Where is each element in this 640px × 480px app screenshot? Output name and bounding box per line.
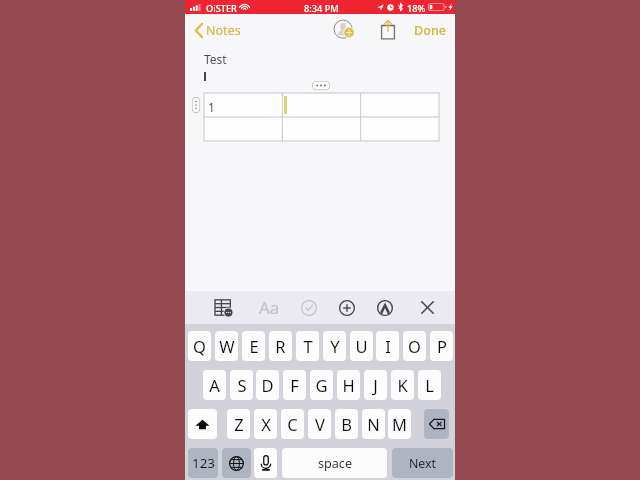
- button[interactable]: W: [215, 331, 238, 361]
- button[interactable]: L: [418, 370, 441, 400]
- staticText: C: [287, 413, 298, 435]
- button[interactable]: N: [362, 409, 385, 439]
- button[interactable]: A: [203, 370, 226, 400]
- staticText: Q: [193, 335, 206, 357]
- button[interactable]: Column options: [312, 81, 330, 90]
- button[interactable]: C: [281, 409, 304, 439]
- button[interactable]: T: [296, 331, 319, 361]
- button[interactable]: P: [430, 331, 453, 361]
- staticText: S: [237, 374, 247, 396]
- staticText: space: [318, 455, 352, 472]
- button[interactable]: Done: [409, 17, 451, 43]
- button[interactable]: X: [254, 409, 277, 439]
- button[interactable]: D: [256, 370, 279, 400]
- button[interactable]: H: [337, 370, 360, 400]
- button[interactable]: Markup: [372, 295, 398, 320]
- button[interactable]: Backspace: [424, 409, 449, 439]
- button[interactable]: K: [391, 370, 414, 400]
- staticText: O: [408, 335, 421, 357]
- button[interactable]: Next keyboard: [222, 448, 251, 478]
- staticText: I: [385, 335, 391, 357]
- staticText: Next: [409, 455, 436, 472]
- staticText: 123: [192, 454, 215, 472]
- button[interactable]: I: [376, 331, 399, 361]
- staticText: K: [397, 374, 408, 396]
- button[interactable]: Add people: [332, 17, 357, 43]
- staticText: B: [341, 413, 352, 435]
- staticText: W: [219, 335, 235, 357]
- staticText: P: [437, 335, 447, 357]
- staticText: V: [315, 413, 325, 435]
- button[interactable]: M: [388, 409, 411, 439]
- button[interactable]: J: [364, 370, 387, 400]
- staticText: N: [367, 413, 380, 435]
- button[interactable]: 123: [188, 448, 218, 478]
- button[interactable]: Q: [188, 331, 211, 361]
- staticText: E: [249, 335, 259, 357]
- staticText: U: [355, 335, 368, 357]
- staticText: L: [425, 374, 434, 396]
- staticText: J: [373, 374, 378, 396]
- button[interactable]: Row options: [192, 97, 200, 113]
- staticText: Test: [204, 51, 227, 67]
- button[interactable]: O: [403, 331, 426, 361]
- staticText: G: [315, 374, 328, 396]
- staticText: M: [392, 413, 407, 435]
- button[interactable]: V: [308, 409, 331, 439]
- button[interactable]: space: [282, 448, 387, 478]
- staticText: T: [303, 335, 313, 357]
- staticText: 1: [208, 99, 215, 115]
- staticText: D: [261, 374, 274, 396]
- button[interactable]: Text formatting: [256, 295, 282, 320]
- button[interactable]: Add attachment: [334, 295, 360, 320]
- button[interactable]: Checklist: [296, 295, 322, 320]
- staticText: A: [209, 374, 220, 396]
- staticText: F: [290, 374, 299, 396]
- button[interactable]: Dictate: [254, 448, 277, 478]
- staticText: X: [261, 413, 271, 435]
- button[interactable]: G: [310, 370, 333, 400]
- staticText: Z: [234, 413, 244, 435]
- button[interactable]: F: [283, 370, 306, 400]
- button[interactable]: Close keyboard: [414, 295, 440, 320]
- button[interactable]: E: [242, 331, 265, 361]
- button[interactable]: Insert table: [210, 295, 236, 320]
- staticText: Y: [330, 335, 340, 357]
- staticText: 18%: [407, 2, 426, 15]
- staticText: Notes: [206, 22, 241, 39]
- button[interactable]: Share: [377, 17, 398, 41]
- button[interactable]: Z: [227, 409, 250, 439]
- staticText: H: [342, 374, 355, 396]
- staticText: Aa: [259, 296, 280, 319]
- staticText: Done: [414, 22, 447, 39]
- button[interactable]: Next: [392, 448, 453, 478]
- staticText: 8:34 PM: [304, 2, 339, 15]
- button[interactable]: Y: [323, 331, 346, 361]
- button[interactable]: Notes: [191, 17, 246, 43]
- staticText: R: [275, 335, 286, 357]
- button[interactable]: Shift: [188, 409, 217, 439]
- button[interactable]: R: [269, 331, 292, 361]
- button[interactable]: U: [350, 331, 373, 361]
- button[interactable]: B: [335, 409, 358, 439]
- staticText: OiSTER: [206, 2, 237, 15]
- button[interactable]: S: [230, 370, 253, 400]
